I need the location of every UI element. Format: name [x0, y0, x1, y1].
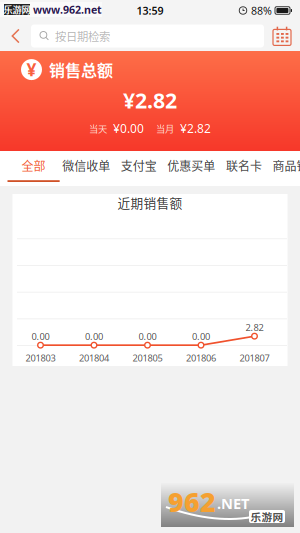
button[interactable]: 支付宝 — [118, 151, 159, 186]
staticText: 0.00 — [85, 330, 103, 343]
staticText: 0.00 — [138, 330, 156, 343]
staticText: 微信收单 — [62, 157, 110, 174]
staticText: 201806 — [186, 352, 216, 364]
staticText: 201804 — [79, 352, 109, 364]
staticText: 当天 — [89, 122, 107, 135]
staticText: 201803 — [25, 352, 55, 364]
staticText: ¥2.82 — [180, 120, 211, 136]
staticText: 乐游网 — [250, 509, 283, 524]
staticText: 销售总额 — [49, 58, 113, 81]
staticText: 201807 — [239, 352, 269, 364]
staticText: 按日期检索 — [55, 28, 110, 44]
staticText: 88% — [251, 3, 272, 18]
staticText: ¥2.82 — [123, 86, 177, 114]
button[interactable]: 微信收单 — [62, 151, 110, 186]
staticText: 0.00 — [192, 330, 210, 343]
button[interactable]: 联名卡 — [223, 151, 264, 186]
button[interactable]: 按日期检索 — [31, 24, 264, 47]
staticText: ¥0.00 — [113, 120, 144, 136]
button[interactable]: Back — [0, 21, 31, 51]
staticText: 201805 — [132, 352, 162, 364]
staticText: 13:59 — [136, 3, 163, 18]
staticText: 全部 — [22, 157, 46, 174]
button[interactable]: 全部 — [13, 151, 54, 186]
staticText: .NET — [217, 493, 249, 513]
staticText: 优惠买单 — [167, 157, 215, 174]
staticText: 乐游网 — [3, 3, 30, 16]
staticText: 当月 — [156, 122, 174, 135]
button[interactable]: 商品销售 — [272, 151, 300, 186]
staticText: 商品销售 — [272, 157, 300, 174]
staticText: 支付宝 — [121, 157, 157, 174]
button[interactable]: Calendar — [264, 21, 300, 51]
staticText: 2.82 — [245, 321, 263, 334]
button[interactable]: 优惠买单 — [167, 151, 215, 186]
staticText: 0.00 — [31, 330, 49, 343]
staticText: 962 — [168, 484, 216, 519]
staticText: 近期销售额 — [117, 193, 182, 212]
staticText: www.962.net — [33, 2, 102, 17]
staticText: 联名卡 — [226, 157, 262, 174]
staticText: ¥ — [26, 58, 36, 81]
